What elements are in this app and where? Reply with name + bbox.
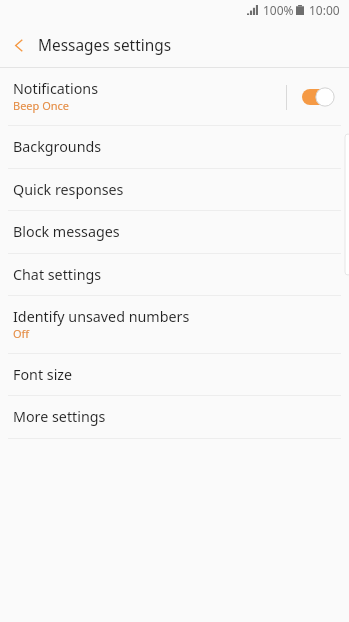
button[interactable]: Back xyxy=(0,24,38,67)
button[interactable]: Notifications xyxy=(0,68,349,126)
button[interactable]: Block messages xyxy=(0,211,349,254)
staticText: 100% xyxy=(263,2,294,18)
button[interactable]: Backgrounds xyxy=(0,126,349,169)
button[interactable]: Identify unsaved numbers xyxy=(0,296,349,354)
staticText: Notifications xyxy=(13,79,99,98)
button[interactable]: Chat settings xyxy=(0,254,349,296)
button[interactable]: Font size xyxy=(0,354,349,396)
button[interactable]: More settings xyxy=(0,396,349,439)
staticText: Identify unsaved numbers xyxy=(13,307,190,326)
staticText: Block messages xyxy=(13,222,120,241)
staticText: Chat settings xyxy=(13,265,102,284)
staticText: Beep Once xyxy=(13,98,70,113)
staticText: Messages settings xyxy=(38,35,172,56)
staticText: Backgrounds xyxy=(13,137,102,156)
button[interactable]: Notifications on xyxy=(302,87,335,107)
staticText: Quick responses xyxy=(13,180,124,199)
button[interactable]: Quick responses xyxy=(0,169,349,211)
staticText: Font size xyxy=(13,365,73,384)
staticText: More settings xyxy=(13,407,106,426)
staticText: 10:00 xyxy=(309,2,340,18)
staticText: Off xyxy=(13,326,30,341)
